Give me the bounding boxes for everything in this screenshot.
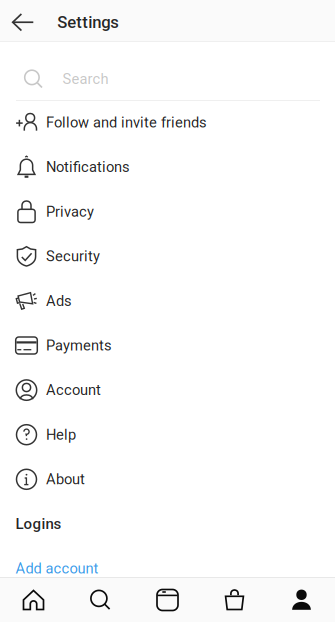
- button[interactable]: Search: [0, 41, 335, 100]
- button[interactable]: Follow and invite friends: [0, 100, 335, 145]
- button[interactable]: Help: [0, 412, 335, 457]
- staticText: Notifications: [46, 158, 130, 176]
- staticText: Ads: [46, 292, 72, 309]
- button[interactable]: About: [0, 457, 335, 502]
- staticText: Follow and invite friends: [46, 114, 207, 131]
- button[interactable]: Notifications: [0, 145, 335, 189]
- button[interactable]: Security: [0, 234, 335, 279]
- button[interactable]: Ads: [0, 279, 335, 323]
- button[interactable]: Reels: [134, 578, 201, 622]
- staticText: About: [46, 471, 85, 488]
- button[interactable]: Add account: [0, 546, 335, 591]
- button[interactable]: Privacy: [0, 189, 335, 234]
- staticText: Settings: [57, 12, 119, 32]
- staticText: Add account: [15, 560, 98, 577]
- staticText: Logins: [15, 515, 61, 533]
- button[interactable]: Back: [0, 2, 45, 43]
- staticText: Account: [46, 381, 101, 399]
- staticText: Security: [46, 248, 100, 265]
- staticText: Payments: [46, 337, 112, 354]
- staticText: Help: [46, 426, 76, 443]
- button[interactable]: Home: [0, 578, 67, 622]
- staticText: Privacy: [46, 203, 94, 220]
- staticText: Search: [62, 70, 108, 88]
- button[interactable]: Profile: [268, 578, 335, 622]
- button[interactable]: Shop: [201, 578, 268, 622]
- button[interactable]: Search: [67, 578, 134, 622]
- button[interactable]: Payments: [0, 323, 335, 368]
- button[interactable]: Account: [0, 368, 335, 412]
